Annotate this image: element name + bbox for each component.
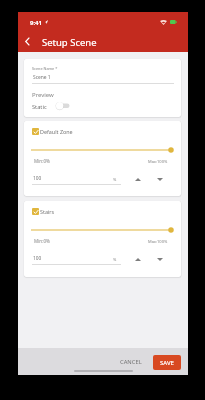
staticText: Stairs: [40, 208, 55, 215]
button[interactable]: Stairs checkbox: [32, 208, 39, 215]
staticText: 100: [33, 175, 42, 182]
button[interactable]: Back: [19, 33, 35, 49]
staticText: Scene 1: [33, 74, 51, 81]
staticText: %: [113, 177, 117, 182]
staticText: 9:41: [30, 19, 42, 27]
staticText: %: [113, 257, 117, 262]
button[interactable]: CANCEL: [118, 355, 144, 369]
staticText: 100: [33, 255, 42, 262]
button[interactable]: SAVE: [153, 355, 181, 370]
staticText: Default Zone: [40, 128, 73, 135]
button[interactable]: Decrease: [153, 252, 167, 266]
staticText: CANCEL: [120, 358, 142, 366]
staticText: Max:100%: [148, 239, 168, 244]
staticText: Preview: [32, 91, 54, 99]
button[interactable]: Static toggle: [55, 101, 70, 111]
staticText: Static: [32, 103, 47, 111]
staticText: SAVE: [160, 359, 174, 367]
staticText: Max:100%: [148, 159, 168, 164]
staticText: Setup Scene: [42, 36, 97, 49]
button[interactable]: Increase: [131, 252, 145, 266]
button[interactable]: Decrease: [153, 172, 167, 186]
staticText: Scene Name *: [32, 66, 58, 71]
staticText: Min:0%: [34, 158, 50, 164]
staticText: Min:0%: [34, 238, 50, 244]
button[interactable]: Default Zone checkbox: [32, 128, 39, 135]
button[interactable]: Increase: [131, 172, 145, 186]
